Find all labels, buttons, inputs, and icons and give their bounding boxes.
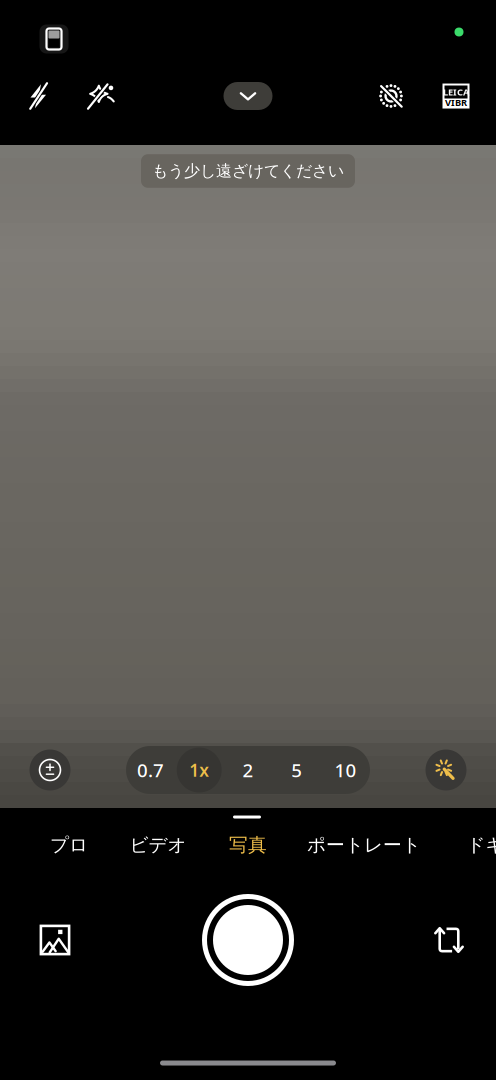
staticText: 10: [335, 758, 357, 782]
staticText: 写真: [229, 833, 267, 856]
button[interactable]: 10: [321, 746, 370, 794]
staticText: 0.7: [137, 758, 164, 782]
button[interactable]: 0.7: [126, 746, 175, 794]
button[interactable]: Filters: [425, 749, 466, 790]
staticText: もう少し遠ざけてください: [152, 161, 344, 181]
staticText: LEICA: [443, 86, 469, 98]
staticText: VIBR: [445, 96, 467, 109]
button[interactable]: 写真: [215, 828, 281, 862]
staticText: ビデオ: [129, 833, 186, 856]
button[interactable]: AI enhancement off: [79, 74, 123, 118]
staticText: 2: [242, 758, 253, 782]
button[interactable]: Take photo: [203, 895, 293, 985]
staticText: 1x: [189, 758, 209, 781]
button[interactable]: Switch camera: [421, 912, 477, 968]
button[interactable]: プロ: [36, 828, 102, 862]
button[interactable]: 2: [224, 746, 272, 794]
button[interactable]: 1x: [175, 746, 224, 794]
staticText: 5: [291, 758, 302, 782]
button[interactable]: ビデオ: [115, 828, 200, 862]
button[interactable]: Aspect ratio: [39, 24, 69, 54]
button[interactable]: Live photo off: [369, 74, 413, 118]
button[interactable]: Leica Vibrant style: [442, 83, 469, 108]
button[interactable]: 5: [272, 746, 321, 794]
staticText: ポートレート: [307, 833, 421, 856]
button[interactable]: Flash off: [17, 74, 61, 118]
button[interactable]: ポートレート: [293, 828, 435, 862]
button[interactable]: Exposure compensation: [29, 749, 70, 790]
staticText: ドキュ: [466, 833, 496, 856]
button[interactable]: More settings: [223, 82, 272, 110]
button[interactable]: ドキュ: [452, 828, 496, 862]
staticText: プロ: [50, 833, 88, 856]
button[interactable]: Gallery: [27, 912, 83, 968]
